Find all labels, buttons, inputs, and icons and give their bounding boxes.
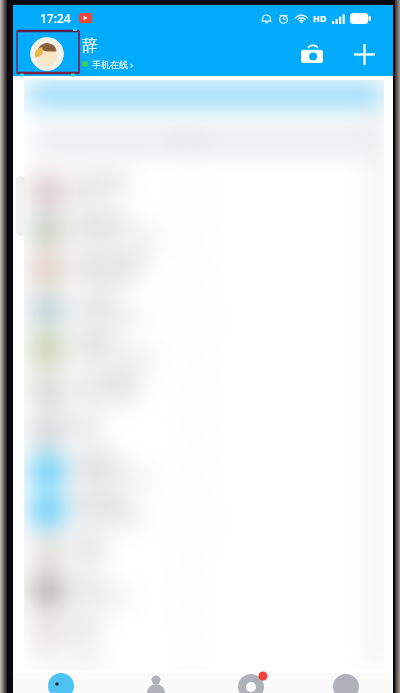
button[interactable]: Profile: [298, 673, 393, 693]
staticText: HD: [313, 12, 327, 24]
button[interactable]: Camera: [295, 37, 329, 71]
staticText: 手机在线 ›: [92, 58, 134, 70]
staticText: 辞: [82, 36, 98, 56]
button[interactable]: Contacts: [108, 673, 203, 693]
button[interactable]: Profile avatar: [30, 37, 64, 71]
staticText: 17:24: [40, 10, 71, 26]
button[interactable]: Add: [347, 37, 381, 71]
button[interactable]: Channels: [203, 673, 298, 693]
button[interactable]: Messages: [13, 673, 108, 693]
